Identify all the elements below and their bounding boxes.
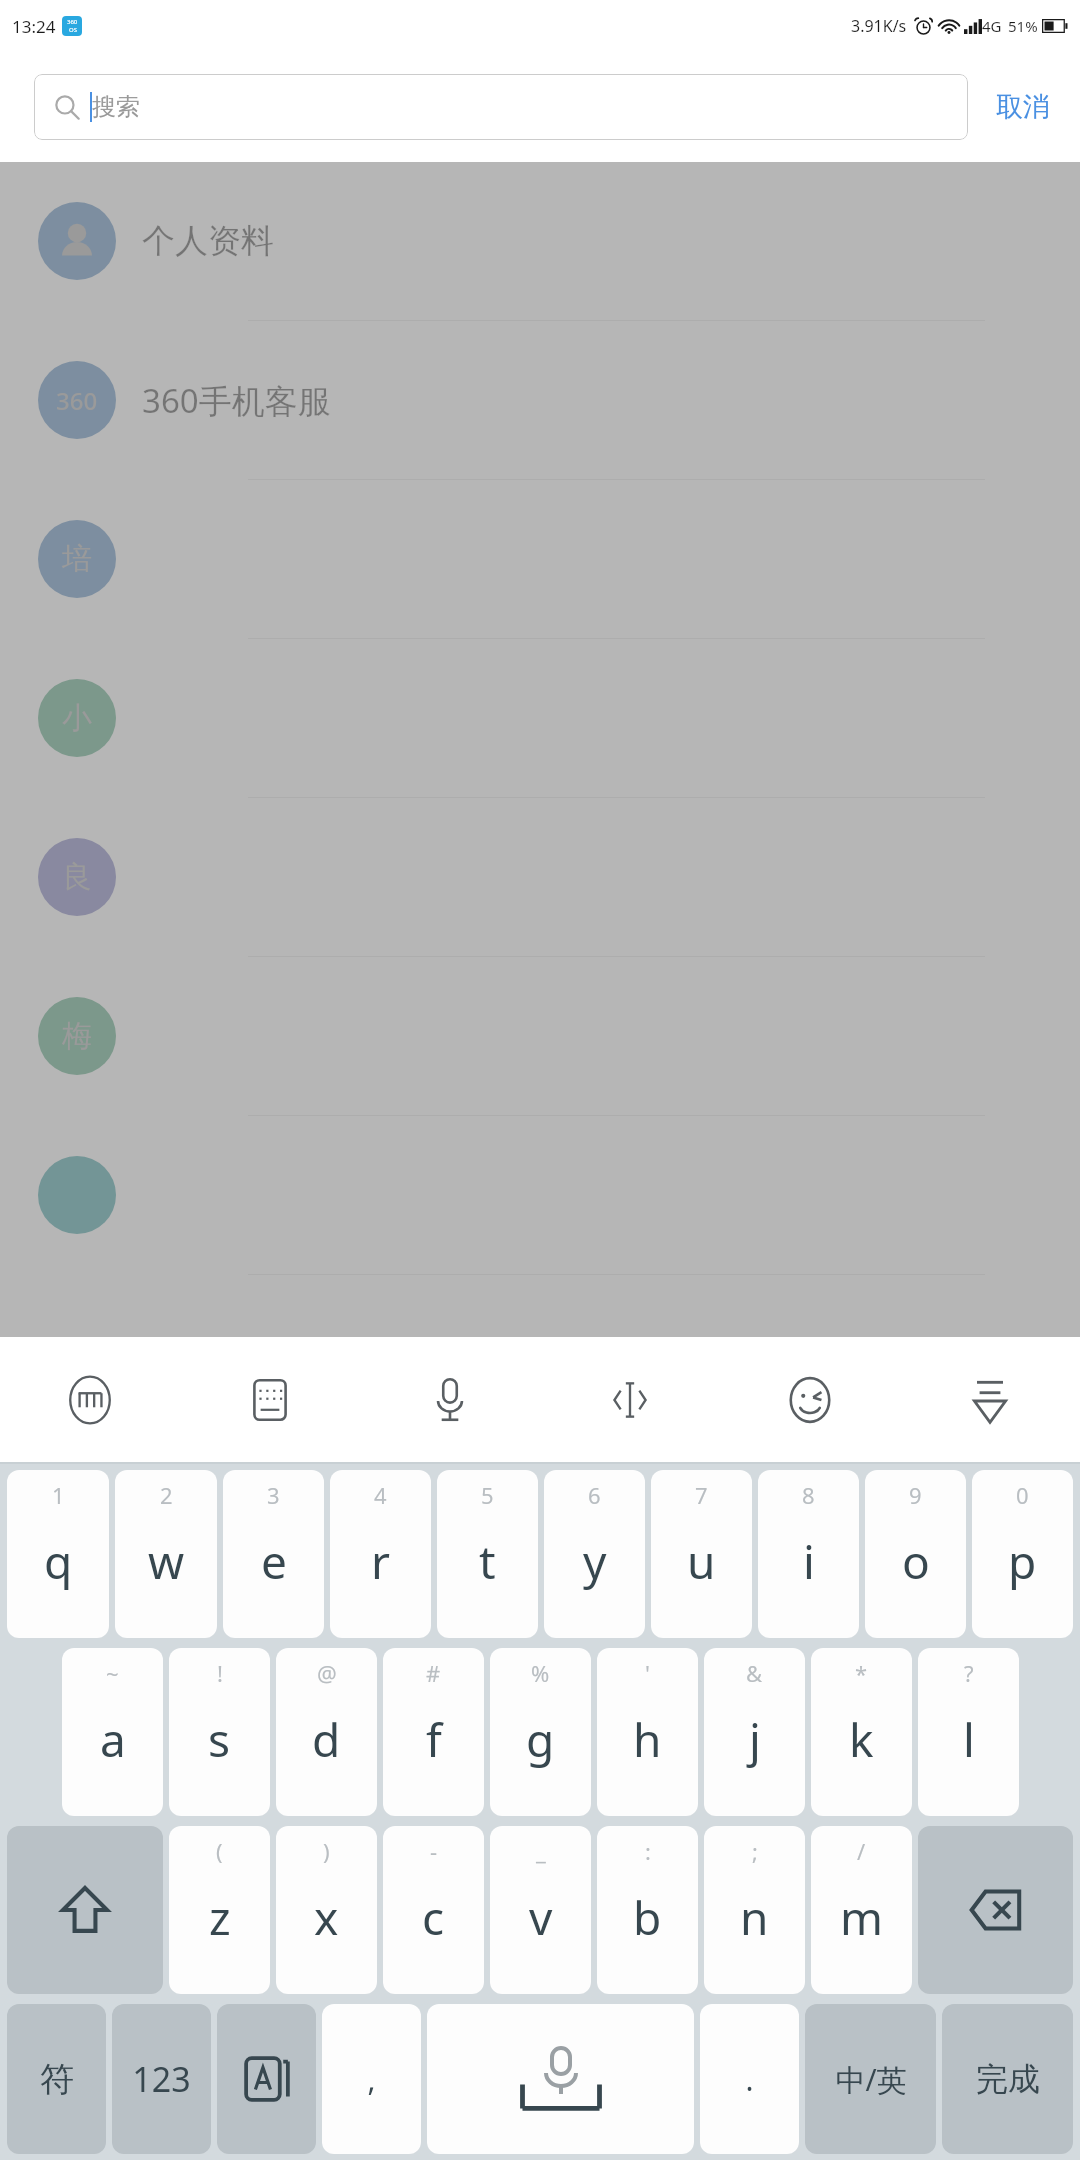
staticText: r	[371, 1530, 390, 1593]
staticText: s	[208, 1708, 231, 1771]
button[interactable]: )	[276, 1826, 377, 1994]
staticText: 9	[909, 1480, 922, 1510]
staticText: a	[100, 1708, 126, 1771]
staticText: n	[740, 1886, 769, 1949]
staticText: t	[479, 1530, 496, 1593]
button[interactable]: @	[276, 1648, 377, 1816]
button[interactable]: :	[597, 1826, 698, 1994]
button[interactable]: 搜索	[34, 74, 968, 140]
button[interactable]: '	[597, 1648, 698, 1816]
staticText: m	[840, 1886, 884, 1949]
staticText: c	[422, 1886, 445, 1949]
staticText: 360	[56, 384, 98, 417]
staticText: (	[216, 1836, 223, 1866]
button[interactable]: 360	[0, 321, 1080, 480]
button[interactable]: Hide keyboard	[900, 1337, 1080, 1462]
button[interactable]: (	[169, 1826, 270, 1994]
staticText: 个人资料	[142, 220, 274, 262]
button[interactable]: #	[383, 1648, 484, 1816]
staticText: j	[749, 1708, 761, 1771]
staticText: 梅	[62, 1017, 92, 1055]
button[interactable]: 小	[0, 639, 1080, 798]
button[interactable]: 个人资料	[0, 162, 1080, 321]
button[interactable]: Input mode	[217, 2004, 316, 2154]
button[interactable]: /	[811, 1826, 912, 1994]
staticText: OS	[69, 26, 77, 34]
button[interactable]: 3	[223, 1470, 324, 1638]
staticText: w	[148, 1530, 185, 1593]
staticText: 7	[695, 1480, 708, 1510]
button[interactable]: Cursor	[540, 1337, 720, 1462]
staticText: o	[902, 1530, 930, 1593]
button[interactable]: Voice input	[360, 1337, 540, 1462]
staticText: .	[745, 2059, 754, 2100]
staticText: )	[323, 1836, 330, 1866]
button[interactable]: *	[811, 1648, 912, 1816]
staticText: 搜索	[92, 92, 140, 122]
button[interactable]: 取消	[990, 80, 1056, 134]
button[interactable]: !	[169, 1648, 270, 1816]
button[interactable]: 符	[7, 2004, 106, 2154]
staticText: 符	[40, 2058, 74, 2101]
button[interactable]: IME	[0, 1337, 180, 1462]
staticText: -	[430, 1836, 438, 1866]
staticText: '	[645, 1658, 650, 1688]
staticText: 2	[160, 1480, 173, 1510]
staticText: #	[426, 1658, 441, 1688]
button[interactable]: 9	[865, 1470, 966, 1638]
staticText: z	[209, 1886, 231, 1949]
button[interactable]: ~	[62, 1648, 163, 1816]
button[interactable]: 中/英	[805, 2004, 936, 2154]
button[interactable]: ;	[704, 1826, 805, 1994]
button[interactable]: _	[490, 1826, 591, 1994]
button[interactable]: 培	[0, 480, 1080, 639]
button[interactable]: &	[704, 1648, 805, 1816]
staticText: 0	[1016, 1480, 1029, 1510]
button[interactable]: Backspace	[918, 1826, 1073, 1994]
staticText: b	[633, 1886, 662, 1949]
button[interactable]: 7	[651, 1470, 752, 1638]
staticText: 51%	[1008, 16, 1038, 36]
button[interactable]: 1	[7, 1470, 109, 1638]
staticText: g	[526, 1708, 555, 1771]
button[interactable]: Keyboard	[180, 1337, 360, 1462]
button[interactable]: 良	[0, 798, 1080, 957]
staticText: @	[317, 1658, 337, 1688]
button[interactable]: 完成	[942, 2004, 1073, 2154]
staticText: 4	[374, 1480, 387, 1510]
staticText: 1	[52, 1480, 65, 1510]
staticText: 3.91K/s	[851, 15, 907, 37]
button[interactable]: Emoji	[720, 1337, 900, 1462]
staticText: 123	[132, 2056, 191, 2102]
staticText: 13:24	[12, 15, 56, 38]
staticText: :	[645, 1836, 651, 1866]
staticText: _	[536, 1836, 546, 1866]
staticText: %	[531, 1658, 550, 1688]
button[interactable]: ,	[322, 2004, 421, 2154]
button[interactable]: Shift	[7, 1826, 163, 1994]
staticText: p	[1008, 1530, 1037, 1593]
button[interactable]: 梅	[0, 957, 1080, 1116]
staticText: 中/英	[835, 2059, 907, 2100]
staticText: /	[857, 1836, 866, 1866]
staticText: *	[855, 1658, 868, 1688]
button[interactable]	[0, 1116, 1080, 1275]
button[interactable]: 0	[972, 1470, 1073, 1638]
staticText: 8	[802, 1480, 815, 1510]
button[interactable]: ?	[918, 1648, 1019, 1816]
staticText: ;	[752, 1836, 758, 1866]
button[interactable]: Space	[427, 2004, 694, 2154]
button[interactable]: -	[383, 1826, 484, 1994]
button[interactable]: %	[490, 1648, 591, 1816]
button[interactable]: 6	[544, 1470, 645, 1638]
button[interactable]: 8	[758, 1470, 859, 1638]
button[interactable]: 4	[330, 1470, 431, 1638]
staticText: 360	[67, 18, 78, 26]
button[interactable]: 123	[112, 2004, 211, 2154]
button[interactable]: 2	[115, 1470, 217, 1638]
staticText: u	[687, 1530, 716, 1593]
button[interactable]: .	[700, 2004, 799, 2154]
button[interactable]: 5	[437, 1470, 538, 1638]
staticText: v	[529, 1886, 553, 1949]
staticText: ~	[106, 1658, 119, 1688]
